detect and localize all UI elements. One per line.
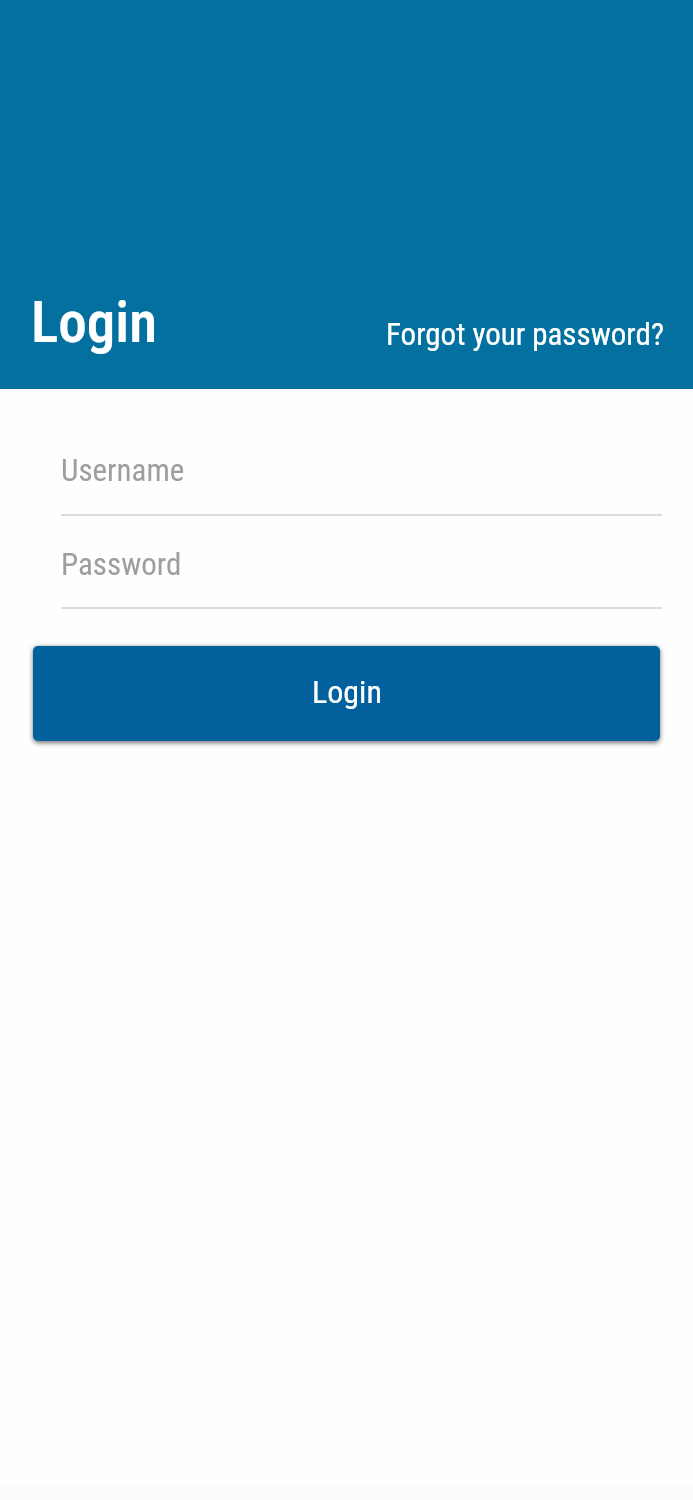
button[interactable]: Login [33, 646, 660, 741]
staticText: Forgot your password? [386, 316, 664, 352]
button[interactable]: Username [33, 420, 660, 516]
button[interactable]: Forgot your password? [370, 300, 678, 360]
staticText: Password [61, 546, 182, 582]
staticText: Login [31, 289, 158, 356]
button[interactable]: Password [33, 518, 660, 610]
staticText: Login [312, 673, 382, 711]
staticText: Username [61, 452, 185, 488]
